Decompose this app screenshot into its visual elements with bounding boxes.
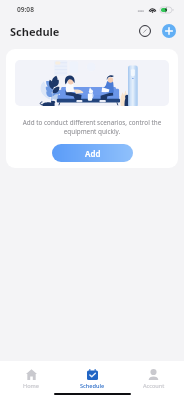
staticText: Add bbox=[85, 148, 101, 159]
staticText: Schedule bbox=[10, 24, 60, 39]
staticText: Account bbox=[143, 382, 165, 390]
button[interactable]: Home bbox=[0, 361, 62, 400]
staticText: Schedule bbox=[80, 382, 105, 390]
staticText: Home bbox=[23, 382, 39, 390]
staticText: 09:08 bbox=[17, 5, 34, 14]
button[interactable]: Timer bbox=[137, 23, 153, 39]
button[interactable]: Add bbox=[52, 144, 133, 162]
button[interactable]: Account bbox=[123, 361, 184, 400]
staticText: Add to conduct different scenarios, cont… bbox=[14, 118, 170, 136]
button[interactable]: Add schedule bbox=[162, 24, 176, 38]
button[interactable]: Schedule bbox=[62, 361, 123, 400]
